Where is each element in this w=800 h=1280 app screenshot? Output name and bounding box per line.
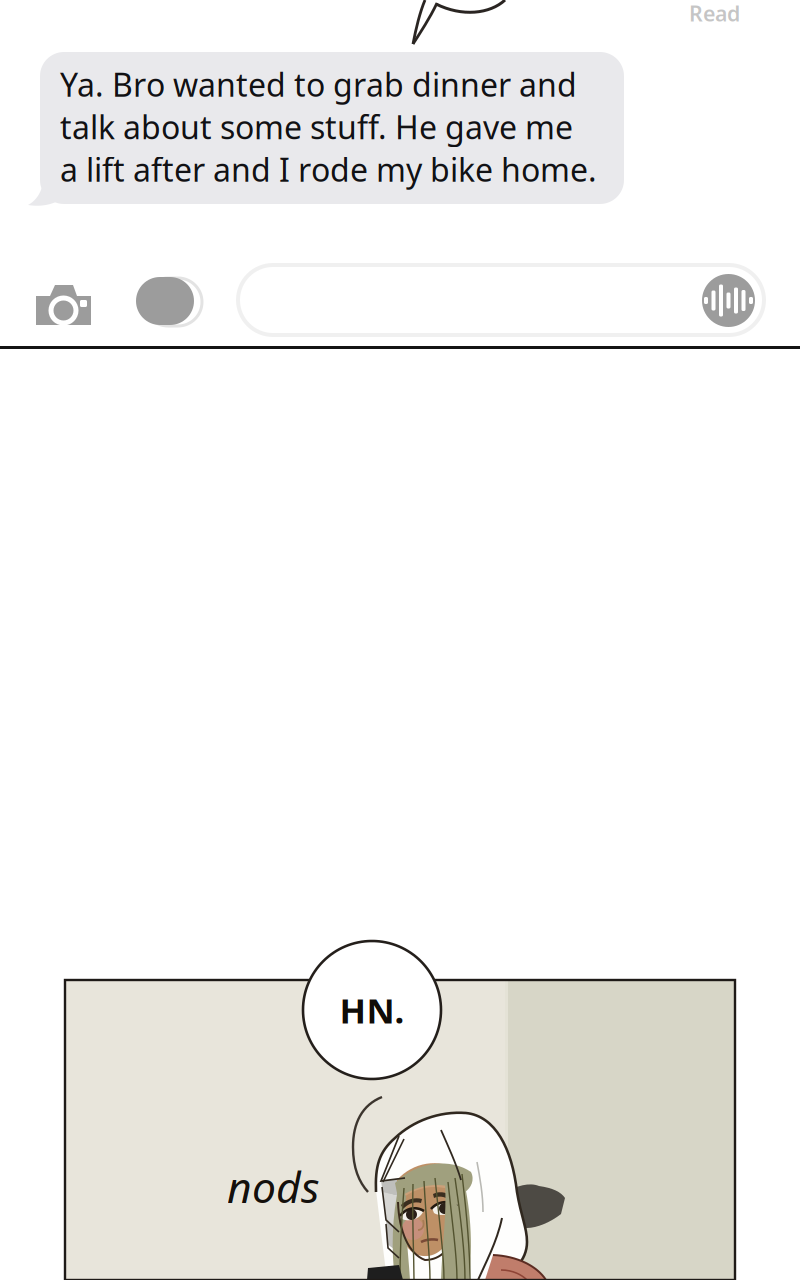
staticText: Ya. Bro wanted to grab dinner and talk a… xyxy=(60,63,597,190)
button[interactable]: Camera xyxy=(26,275,102,336)
staticText: nods xyxy=(227,1158,319,1215)
staticText: Read xyxy=(689,0,740,27)
button[interactable]: Message field xyxy=(238,265,764,335)
button[interactable]: Stickers xyxy=(122,267,208,335)
staticText: HN. xyxy=(339,987,404,1033)
